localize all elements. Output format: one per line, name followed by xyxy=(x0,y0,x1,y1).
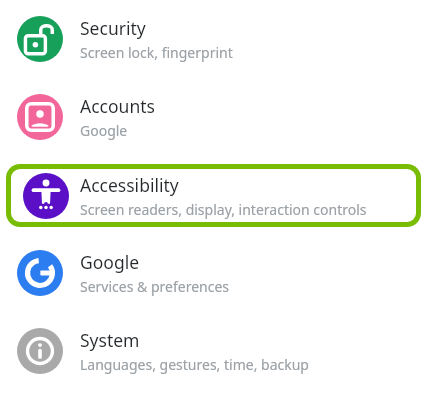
staticText: Screen lock, fingerprint xyxy=(80,43,233,62)
staticText: Accounts xyxy=(80,94,155,118)
button[interactable]: System xyxy=(0,312,427,390)
staticText: Screen readers, display, interaction con… xyxy=(80,200,367,219)
staticText: Google xyxy=(80,250,140,274)
staticText: System xyxy=(80,328,140,352)
button[interactable]: Security xyxy=(0,0,427,78)
button[interactable]: Accounts xyxy=(0,78,427,156)
staticText: Google xyxy=(80,121,128,140)
staticText: Accessibility xyxy=(80,173,179,197)
button[interactable]: Google xyxy=(0,234,427,312)
staticText: Services & preferences xyxy=(80,277,230,296)
staticText: Security xyxy=(80,16,146,40)
staticText: Languages, gestures, time, backup xyxy=(80,355,309,374)
button[interactable]: Accessibility xyxy=(11,169,416,222)
